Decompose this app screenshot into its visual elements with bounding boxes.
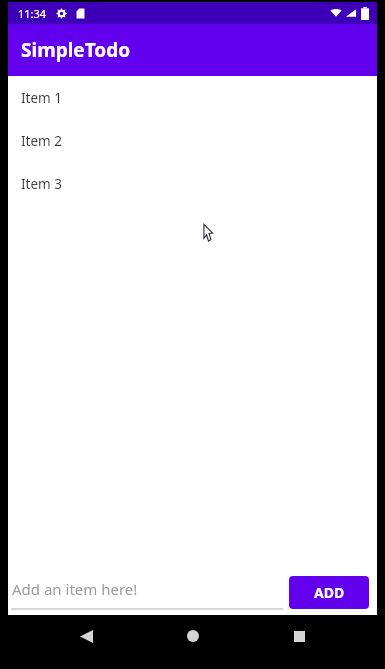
button[interactable]: Recent apps — [278, 615, 320, 657]
staticText: Item 3 — [21, 175, 62, 193]
staticText: Item 2 — [21, 132, 62, 150]
button[interactable]: Item 3 — [8, 162, 377, 205]
button[interactable]: ADD — [289, 576, 369, 609]
staticText: 11:34 — [18, 6, 47, 21]
button[interactable]: Item 1 — [8, 76, 377, 119]
staticText: Item 1 — [21, 89, 62, 107]
button[interactable]: Home — [172, 615, 214, 657]
button[interactable]: Item 2 — [8, 119, 377, 162]
button[interactable]: Add an item here! — [11, 569, 283, 615]
staticText: SimpleTodo — [21, 37, 131, 63]
button[interactable]: Back — [65, 615, 107, 657]
staticText: ADD — [314, 583, 345, 602]
staticText: Add an item here! — [12, 579, 138, 599]
